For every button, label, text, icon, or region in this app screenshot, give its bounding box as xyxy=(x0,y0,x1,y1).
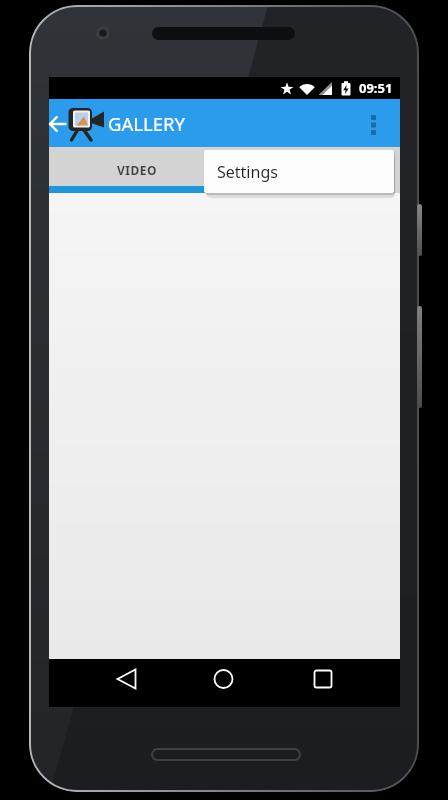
button[interactable] xyxy=(106,659,147,707)
staticText: VIDEO xyxy=(117,162,157,178)
button[interactable] xyxy=(302,659,343,707)
staticText: 09:51 xyxy=(359,79,393,97)
button[interactable] xyxy=(49,99,71,147)
staticText: GALLERY xyxy=(108,111,185,136)
button[interactable]: Settings xyxy=(204,150,394,193)
button[interactable] xyxy=(203,659,244,707)
button[interactable] xyxy=(359,99,400,147)
button[interactable]: VIDEO xyxy=(49,147,224,193)
staticText: Settings xyxy=(217,161,278,183)
